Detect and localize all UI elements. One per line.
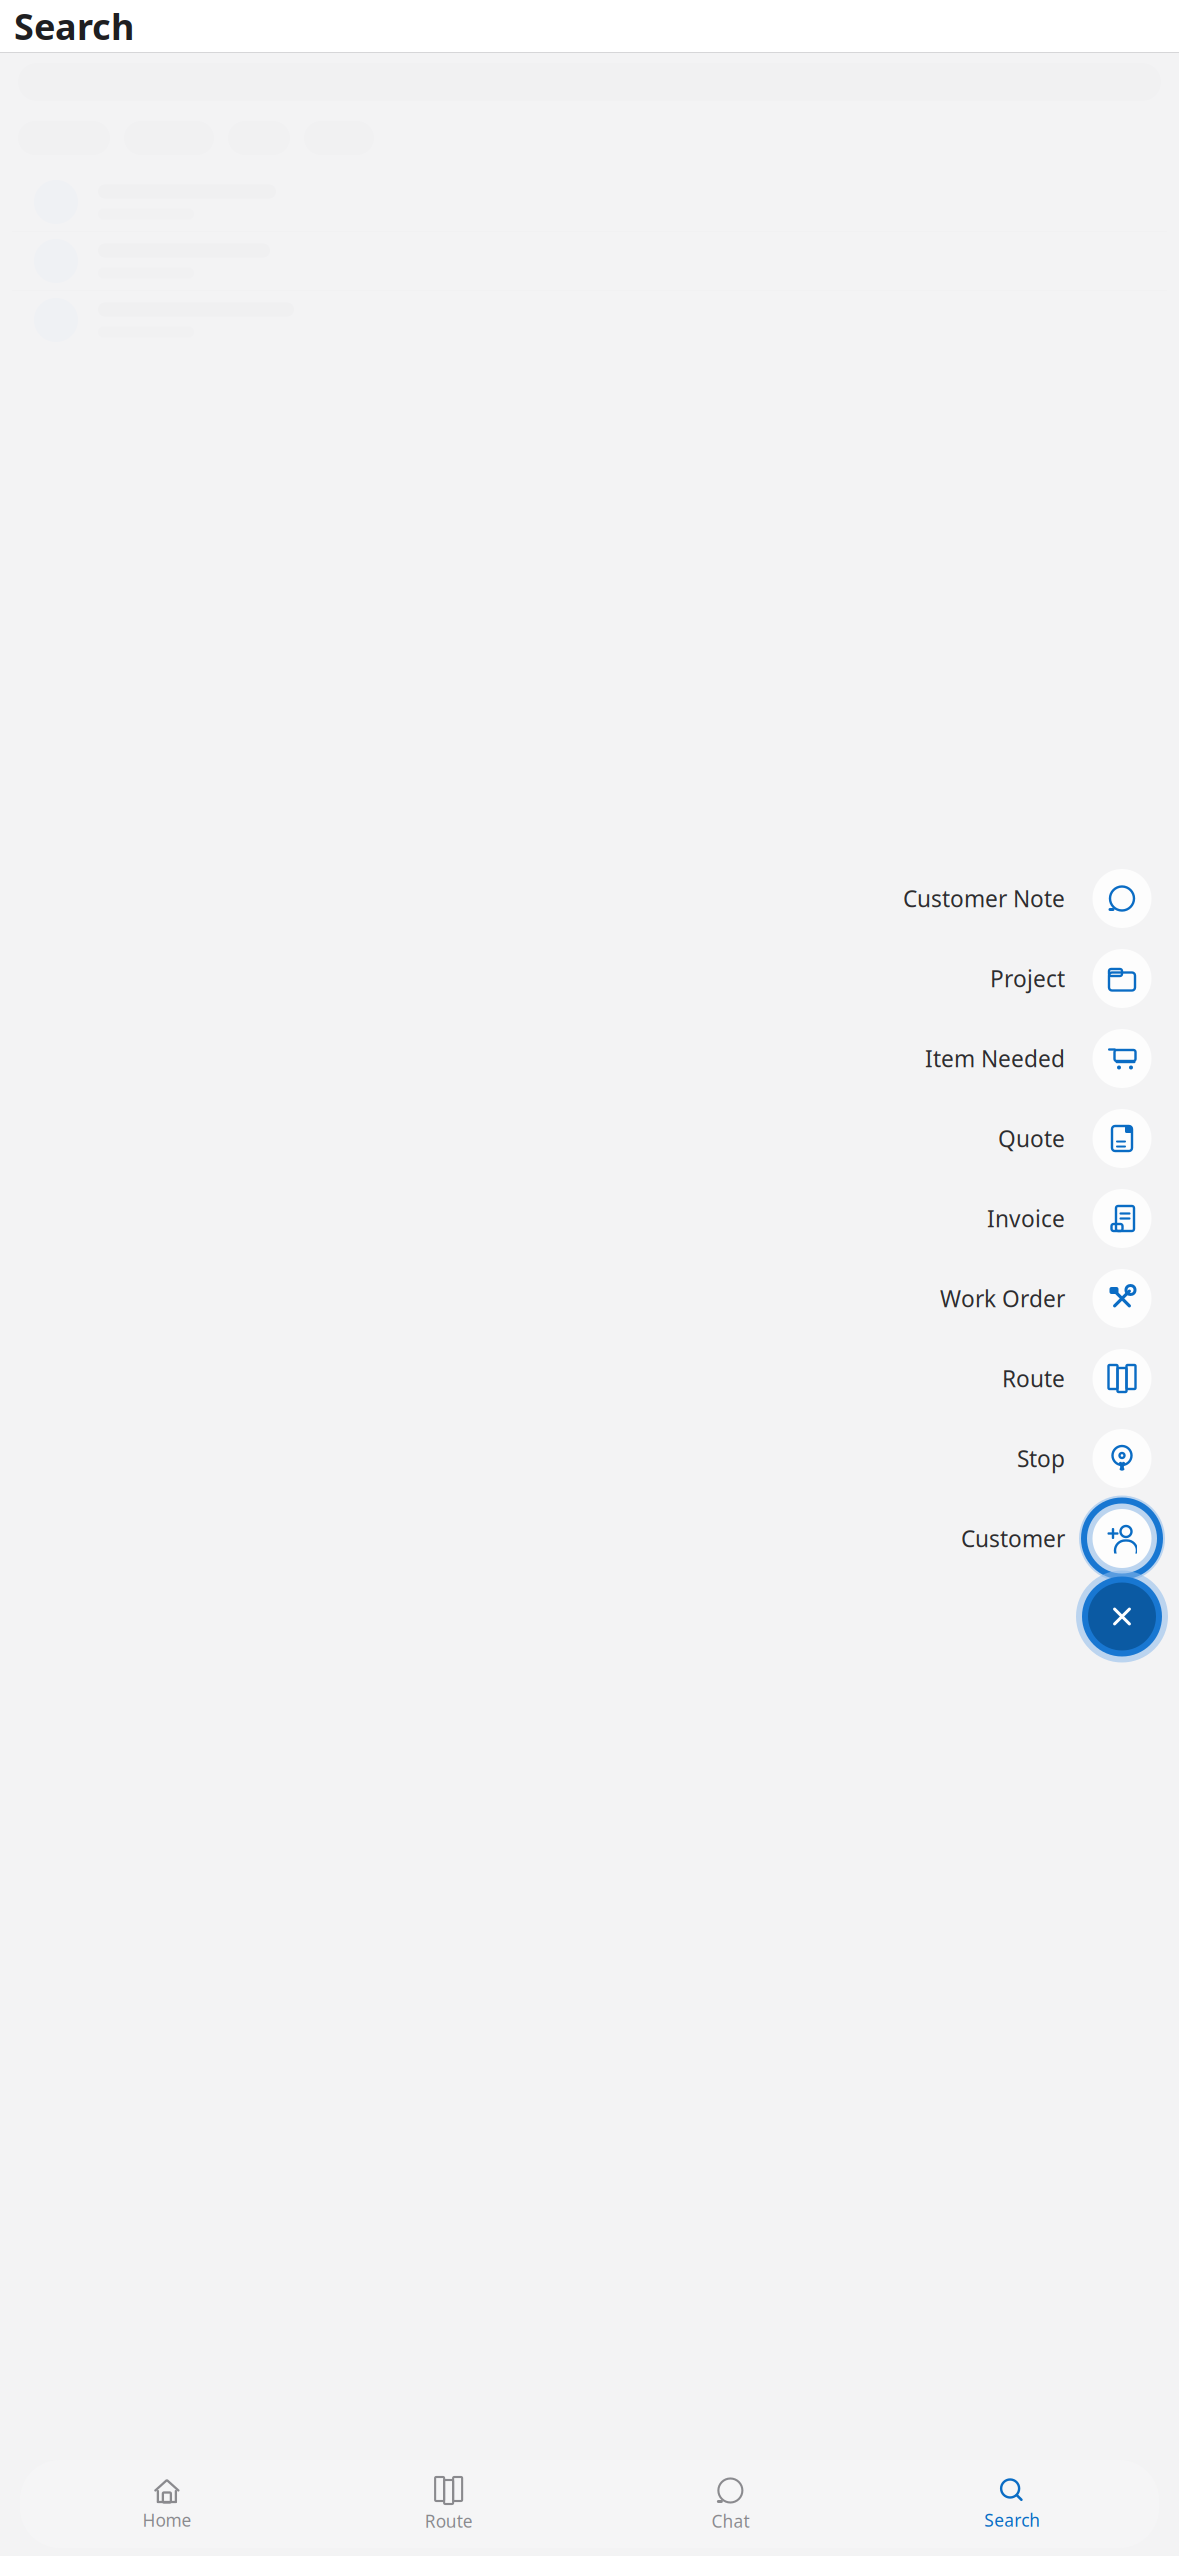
button[interactable]: Customer bbox=[0, 1495, 1179, 1581]
staticText: Search bbox=[984, 2508, 1040, 2531]
button[interactable]: Invoice bbox=[0, 1175, 1179, 1261]
staticText: Invoice bbox=[987, 1203, 1065, 1233]
staticText: Chat bbox=[711, 2509, 749, 2532]
staticText: Home bbox=[142, 2508, 191, 2531]
button[interactable]: Project bbox=[0, 935, 1179, 1021]
staticText: Item Needed bbox=[925, 1043, 1065, 1073]
button[interactable]: Work Order bbox=[0, 1255, 1179, 1341]
staticText: Route bbox=[1002, 1363, 1065, 1393]
staticText: Work Order bbox=[940, 1283, 1065, 1313]
button[interactable]: Route bbox=[308, 2465, 590, 2542]
button[interactable]: Chat bbox=[589, 2465, 871, 2542]
button[interactable]: Home bbox=[26, 2466, 308, 2541]
staticText: Search bbox=[14, 2, 134, 50]
button[interactable]: Close menu bbox=[0, 1570, 1179, 1662]
button[interactable]: Stop bbox=[0, 1415, 1179, 1501]
staticText: Customer Note bbox=[903, 883, 1065, 913]
staticText: Stop bbox=[1017, 1443, 1065, 1473]
staticText: Customer bbox=[961, 1523, 1065, 1553]
button[interactable]: Item Needed bbox=[0, 1015, 1179, 1101]
staticText: Quote bbox=[998, 1123, 1065, 1153]
button[interactable]: Search bbox=[871, 2466, 1153, 2541]
button[interactable]: Route bbox=[0, 1335, 1179, 1421]
staticText: Project bbox=[990, 963, 1065, 993]
button[interactable]: Customer Note bbox=[0, 855, 1179, 941]
staticText: Route bbox=[425, 2509, 473, 2532]
button[interactable]: Quote bbox=[0, 1095, 1179, 1181]
